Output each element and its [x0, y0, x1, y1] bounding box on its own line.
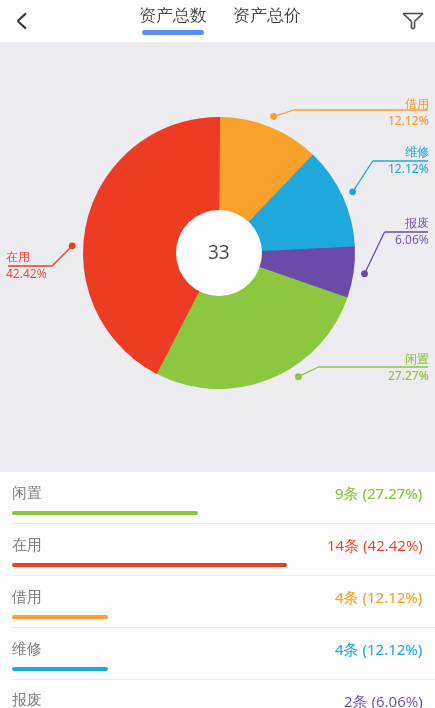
staticText: 4条 (12.12%)	[335, 639, 423, 659]
button[interactable]: 维修	[0, 628, 435, 680]
staticText: 12.12%	[388, 160, 429, 176]
button[interactable]: 资产总价	[230, 5, 304, 26]
staticText: 维修	[405, 144, 429, 159]
staticText: 9条 (27.27%)	[335, 483, 423, 503]
button[interactable]: 在用	[0, 524, 435, 576]
button[interactable]: 借用	[0, 576, 435, 628]
staticText: 维修	[12, 640, 42, 659]
staticText: 报废	[405, 215, 429, 230]
staticText: 12.12%	[388, 112, 429, 128]
button[interactable]: 报废	[0, 680, 435, 708]
staticText: 闲置	[12, 484, 42, 503]
staticText: 闲置	[405, 351, 429, 366]
staticText: 资产总数	[139, 5, 207, 26]
button[interactable]: Filter	[391, 0, 435, 42]
staticText: 借用	[405, 96, 429, 111]
staticText: 14条 (42.42%)	[327, 535, 423, 555]
button[interactable]: 闲置	[0, 472, 435, 524]
staticText: 报废	[12, 691, 42, 708]
button[interactable]: Back	[0, 0, 44, 42]
staticText: 资产总价	[233, 5, 301, 26]
staticText: 4条 (12.12%)	[335, 587, 423, 607]
staticText: 借用	[12, 588, 42, 607]
staticText: 33	[208, 239, 230, 265]
staticText: 在用	[12, 536, 42, 555]
staticText: 42.42%	[6, 265, 47, 281]
staticText: 在用	[6, 249, 30, 264]
staticText: 27.27%	[388, 367, 429, 383]
staticText: 2条 (6.06%)	[344, 691, 423, 708]
button[interactable]: 资产总数	[136, 5, 210, 35]
staticText: 6.06%	[395, 231, 429, 247]
